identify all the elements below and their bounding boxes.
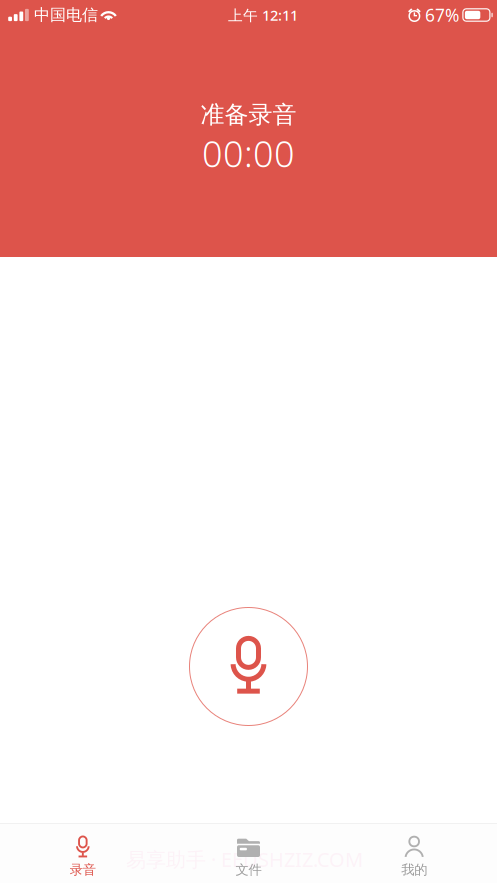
staticText: 录音: [70, 862, 96, 878]
staticText: 中国电信: [34, 5, 98, 25]
staticText: 67%: [425, 3, 459, 26]
button[interactable]: 录音: [0, 824, 166, 883]
button[interactable]: 我的: [331, 824, 497, 883]
button[interactable]: 文件: [166, 824, 331, 883]
staticText: 易享助手 · EEDSHZIZ.COM: [126, 846, 363, 873]
button[interactable]: Start recording: [189, 607, 308, 726]
staticText: 文件: [235, 862, 261, 878]
staticText: 00:00: [202, 129, 295, 177]
staticText: 准备录音: [200, 100, 296, 129]
staticText: 我的: [401, 862, 427, 878]
staticText: 上午 12:11: [228, 5, 298, 25]
